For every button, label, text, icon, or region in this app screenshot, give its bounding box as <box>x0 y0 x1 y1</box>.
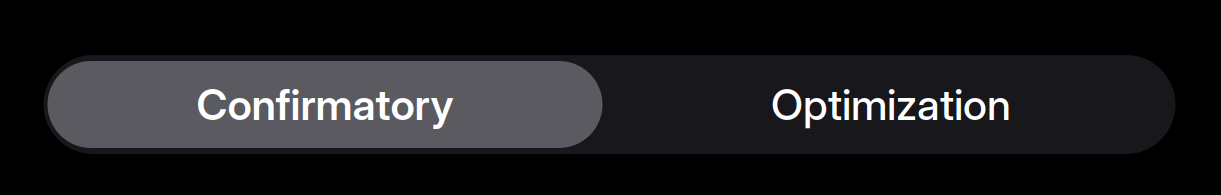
staticText: Optimization <box>771 79 1011 130</box>
button[interactable]: Confirmatory <box>47 61 602 148</box>
button[interactable]: Optimization <box>606 61 1175 148</box>
staticText: Confirmatory <box>196 79 453 130</box>
